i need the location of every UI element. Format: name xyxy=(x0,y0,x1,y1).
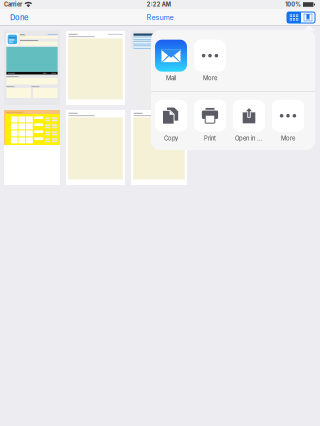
staticText: Copy xyxy=(164,135,178,142)
staticText: Mail xyxy=(166,75,176,82)
button[interactable]: More xyxy=(272,100,304,142)
button[interactable]: Mail xyxy=(155,40,187,82)
button[interactable]: Page view xyxy=(301,12,315,23)
button[interactable]: Open in ... xyxy=(233,100,265,142)
staticText: More xyxy=(203,75,217,82)
button[interactable]: Thumbnail view xyxy=(287,12,301,23)
staticText: Done xyxy=(10,13,28,22)
staticText: Print xyxy=(204,135,216,142)
staticText: Resume xyxy=(146,13,173,22)
staticText: More xyxy=(281,135,295,142)
button[interactable]: Done xyxy=(5,9,33,26)
staticText: 2:22 AM xyxy=(147,1,171,8)
button[interactable]: More xyxy=(194,40,226,82)
staticText: Carrier xyxy=(4,1,22,8)
button[interactable]: Copy xyxy=(155,100,187,142)
staticText: Open in ... xyxy=(235,135,263,142)
staticText: 100% xyxy=(285,1,301,8)
button[interactable]: Resume xyxy=(141,9,178,26)
button[interactable]: Print xyxy=(194,100,226,142)
